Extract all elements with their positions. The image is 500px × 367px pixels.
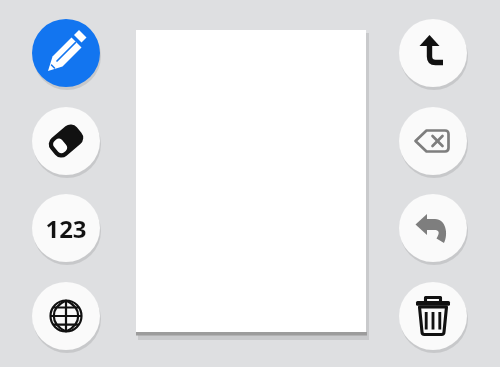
- button[interactable]: Backspace: [399, 107, 467, 175]
- button[interactable]: Numbers: [32, 194, 100, 262]
- button[interactable]: Enter: [399, 19, 467, 87]
- button[interactable]: Language: [32, 282, 100, 350]
- button[interactable]: Pen: [32, 19, 100, 87]
- staticText: 123: [45, 212, 87, 245]
- button[interactable]: Delete: [399, 282, 467, 350]
- button[interactable]: Undo: [399, 194, 467, 262]
- button[interactable]: Eraser: [32, 107, 100, 175]
